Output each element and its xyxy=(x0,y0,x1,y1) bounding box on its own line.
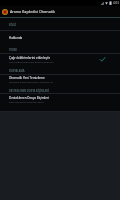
button[interactable]: App icon xyxy=(2,9,8,15)
staticText: 4:03 xyxy=(113,1,119,5)
staticText: BİLGİ xyxy=(9,23,16,26)
staticText: Kayıt için dosya formatını seçin xyxy=(9,100,44,103)
staticText: DOSYALAMA xyxy=(9,69,25,72)
staticText: Desteklenen Dosya Biçimleri xyxy=(9,96,49,100)
other: Enabled xyxy=(99,56,106,63)
staticText: Kayıt çağrılarında mini bildirim bildiri… xyxy=(9,60,54,63)
button[interactable]: Çağrı bildirimlerini etkinleştir xyxy=(0,53,120,66)
staticText: otomatik olarak eski kayıtlı aramaları s… xyxy=(9,80,54,83)
button[interactable]: Hakkında xyxy=(0,32,120,44)
staticText: Otomatik Yeni Temizleme xyxy=(9,76,45,80)
staticText: Arama Kaydedici Otomatik xyxy=(10,9,55,14)
staticText: DESTEKLENEN DOSYA BİÇİMLERİ xyxy=(9,89,49,92)
staticText: Hakkında xyxy=(9,36,23,40)
staticText: Çağrı bildirimlerini etkinleştir xyxy=(9,56,50,60)
button[interactable]: Otomatik Yeni Temizleme xyxy=(0,75,120,87)
button[interactable]: Desteklenen Dosya Biçimleri xyxy=(0,95,120,107)
staticText: YEDEK xyxy=(9,48,17,51)
